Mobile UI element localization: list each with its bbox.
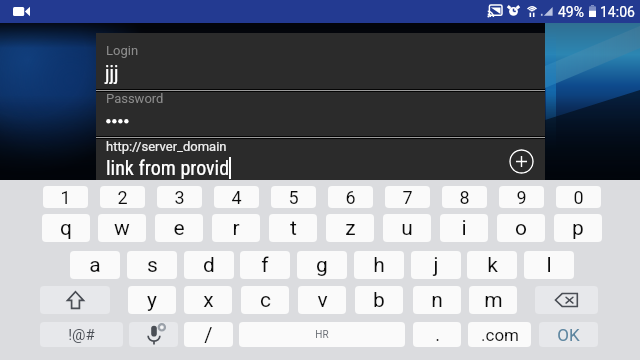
staticText: k xyxy=(487,253,498,278)
staticText: 4 xyxy=(231,187,242,208)
staticText: g xyxy=(316,253,328,278)
button[interactable]: s xyxy=(127,251,177,279)
staticText: jjj xyxy=(105,61,119,84)
button[interactable]: o xyxy=(497,214,545,242)
staticText: b xyxy=(373,288,385,313)
button[interactable]: u xyxy=(383,214,431,242)
staticText: / xyxy=(204,323,213,346)
staticText: o xyxy=(515,216,527,241)
button[interactable]: 6 xyxy=(328,186,373,208)
button[interactable]: l xyxy=(524,251,574,279)
button[interactable]: r xyxy=(212,214,260,242)
button[interactable]: / xyxy=(184,322,233,347)
button[interactable]: z xyxy=(326,214,374,242)
button[interactable]: w xyxy=(98,214,146,242)
staticText: 8 xyxy=(459,187,470,208)
staticText: OK xyxy=(557,325,580,345)
staticText: r xyxy=(232,216,240,241)
staticText: p xyxy=(572,216,584,241)
staticText: f xyxy=(261,253,269,278)
button[interactable]: v xyxy=(298,286,346,314)
staticText: h xyxy=(373,253,385,278)
button[interactable]: f xyxy=(240,251,290,279)
staticText: y xyxy=(147,288,157,313)
button[interactable]: !@# xyxy=(40,322,123,347)
staticText: i xyxy=(461,216,467,241)
button[interactable]: h xyxy=(354,251,404,279)
button[interactable]: Backspace xyxy=(535,286,598,314)
staticText: Password xyxy=(106,91,164,106)
button[interactable]: i xyxy=(440,214,488,242)
button[interactable]: c xyxy=(241,286,289,314)
button[interactable]: k xyxy=(467,251,517,279)
staticText: t xyxy=(290,216,297,241)
staticText: http://server_domain xyxy=(106,139,227,154)
button[interactable]: q xyxy=(42,214,90,242)
staticText: j xyxy=(433,253,439,278)
button[interactable]: HR xyxy=(239,322,405,347)
staticText: n xyxy=(431,288,443,313)
staticText: link from provid xyxy=(106,156,230,179)
staticText: 3 xyxy=(174,187,185,208)
button[interactable]: OK xyxy=(539,322,598,347)
staticText: 0 xyxy=(573,187,584,208)
button[interactable]: a xyxy=(70,251,120,279)
button[interactable]: b xyxy=(355,286,403,314)
button[interactable]: d xyxy=(184,251,234,279)
button[interactable]: j xyxy=(411,251,461,279)
button[interactable]: 8 xyxy=(442,186,487,208)
button[interactable]: 4 xyxy=(214,186,259,208)
button[interactable]: t xyxy=(269,214,317,242)
button[interactable]: 9 xyxy=(499,186,544,208)
staticText: l xyxy=(546,253,552,278)
button[interactable]: y xyxy=(128,286,176,314)
staticText: 49% xyxy=(558,4,584,20)
staticText: e xyxy=(173,216,185,241)
staticText: . xyxy=(435,324,440,345)
staticText: w xyxy=(114,216,130,241)
button[interactable]: 5 xyxy=(271,186,316,208)
staticText: a xyxy=(89,253,101,278)
staticText: 9 xyxy=(516,187,527,208)
staticText: 5 xyxy=(288,187,299,208)
staticText: 1 xyxy=(60,187,71,208)
staticText: c xyxy=(260,288,271,313)
button[interactable]: g xyxy=(297,251,347,279)
staticText: m xyxy=(484,288,503,313)
button[interactable]: m xyxy=(469,286,517,314)
staticText: .com xyxy=(481,325,519,345)
staticText: q xyxy=(60,216,72,241)
button[interactable]: e xyxy=(155,214,203,242)
staticText: 2 xyxy=(117,187,128,208)
button[interactable]: .com xyxy=(468,322,531,347)
staticText: v xyxy=(317,288,328,313)
button[interactable]: 2 xyxy=(100,186,145,208)
button[interactable]: n xyxy=(413,286,461,314)
button[interactable]: 1 xyxy=(43,186,88,208)
staticText: 14:06 xyxy=(600,4,635,20)
button[interactable]: . xyxy=(413,322,461,347)
button[interactable]: 7 xyxy=(385,186,430,208)
staticText: 6 xyxy=(345,187,356,208)
staticText: z xyxy=(345,216,356,241)
button[interactable]: x xyxy=(184,286,232,314)
button[interactable]: Add xyxy=(509,149,534,174)
staticText: HR xyxy=(315,329,329,341)
staticText: s xyxy=(147,253,158,278)
staticText: u xyxy=(401,216,413,241)
staticText: Login xyxy=(106,43,139,58)
staticText: !@# xyxy=(68,326,95,344)
button[interactable]: 0 xyxy=(556,186,601,208)
staticText: x xyxy=(203,288,214,313)
staticText: d xyxy=(203,253,215,278)
button[interactable]: p xyxy=(554,214,602,242)
button[interactable]: Voice input xyxy=(129,322,178,347)
staticText: 7 xyxy=(402,187,413,208)
button[interactable]: Shift xyxy=(40,286,110,314)
button[interactable]: 3 xyxy=(157,186,202,208)
